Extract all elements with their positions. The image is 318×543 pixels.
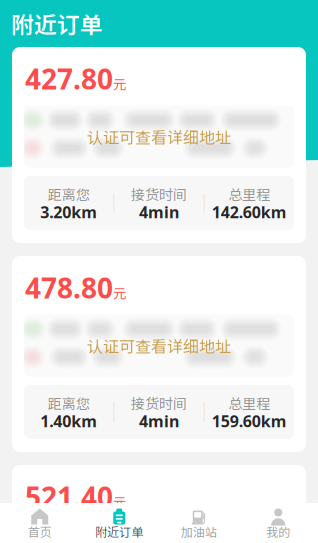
staticText: 521.40 [25, 478, 113, 515]
staticText: 附近订单 [11, 7, 103, 40]
staticText: 距离您 [48, 184, 90, 204]
staticText: 距离您 [48, 393, 90, 413]
staticText: 478.80 [25, 269, 113, 306]
staticText: 接货时间 [131, 184, 187, 204]
button[interactable]: 加油站 [159, 503, 238, 543]
staticText: 元 [113, 74, 126, 93]
staticText: 427.80 [25, 60, 113, 97]
staticText: 1.40km [40, 410, 97, 432]
staticText: 4min [139, 410, 179, 432]
button[interactable]: 427.80 [12, 47, 306, 243]
staticText: 142.60km [212, 201, 287, 223]
staticText: 元 [113, 283, 126, 302]
staticText: 加油站 [181, 523, 217, 540]
staticText: 3.20km [40, 201, 97, 223]
staticText: 元 [113, 492, 126, 511]
staticText: 总里程 [228, 184, 270, 204]
staticText: 我的 [266, 523, 290, 540]
button[interactable]: 478.80 [12, 256, 306, 452]
button[interactable]: 521.40 [12, 465, 306, 543]
staticText: 接货时间 [131, 393, 187, 413]
staticText: 认证可查看详细地址 [87, 334, 231, 357]
staticText: 附近订单 [95, 523, 143, 540]
button[interactable]: 我的 [238, 503, 318, 543]
staticText: 认证可查看详细地址 [87, 125, 231, 148]
button[interactable]: 附近订单 [79, 503, 159, 543]
button[interactable]: 首页 [0, 503, 79, 543]
staticText: 4min [139, 201, 179, 223]
staticText: 首页 [28, 523, 52, 540]
staticText: 总里程 [228, 393, 270, 413]
staticText: 159.60km [212, 410, 287, 432]
